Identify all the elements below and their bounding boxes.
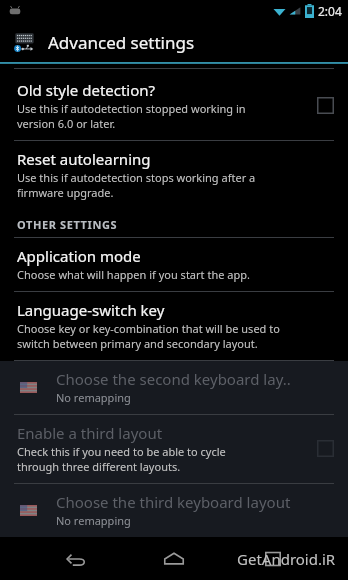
button[interactable]: Recent apps: [249, 537, 297, 580]
staticText: No remapping: [56, 390, 131, 405]
staticText: Language-switch key: [17, 300, 165, 320]
button[interactable]: Application mode: [0, 238, 348, 291]
button[interactable]: Language-switch key: [0, 292, 348, 360]
staticText: Choose what will happen if you start the…: [17, 267, 250, 282]
button[interactable]: Enable a third layout: [0, 415, 348, 483]
staticText: GetAndroid.iR: [237, 549, 336, 569]
staticText: 2:04: [318, 3, 342, 19]
button[interactable]: Old style detection?: [0, 72, 348, 140]
button[interactable]: Choose the second keyboard lay..: [0, 361, 348, 414]
button[interactable]: Reset autolearning: [0, 141, 348, 209]
staticText: OTHER SETTINGS: [17, 217, 118, 232]
button[interactable]: Choose the third keyboard layout: [0, 484, 348, 537]
staticText: Reset autolearning: [17, 149, 151, 169]
staticText: Choose the third keyboard layout: [56, 492, 291, 512]
staticText: Advanced settings: [48, 31, 195, 54]
staticText: Choose the second keyboard lay..: [56, 369, 291, 389]
staticText: Enable a third layout: [17, 423, 163, 443]
button[interactable]: Back: [51, 537, 99, 580]
staticText: No remapping: [56, 513, 131, 528]
staticText: Old style detection?: [17, 80, 156, 100]
button[interactable]: Home: [150, 537, 198, 580]
staticText: Use this if autodetection stops working …: [17, 170, 256, 200]
staticText: Application mode: [17, 246, 141, 266]
staticText: Use this if autodetection stopped workin…: [17, 101, 246, 131]
staticText: Choose key or key-combination that will …: [17, 321, 280, 351]
staticText: Check this if you need to be able to cyc…: [17, 444, 226, 474]
